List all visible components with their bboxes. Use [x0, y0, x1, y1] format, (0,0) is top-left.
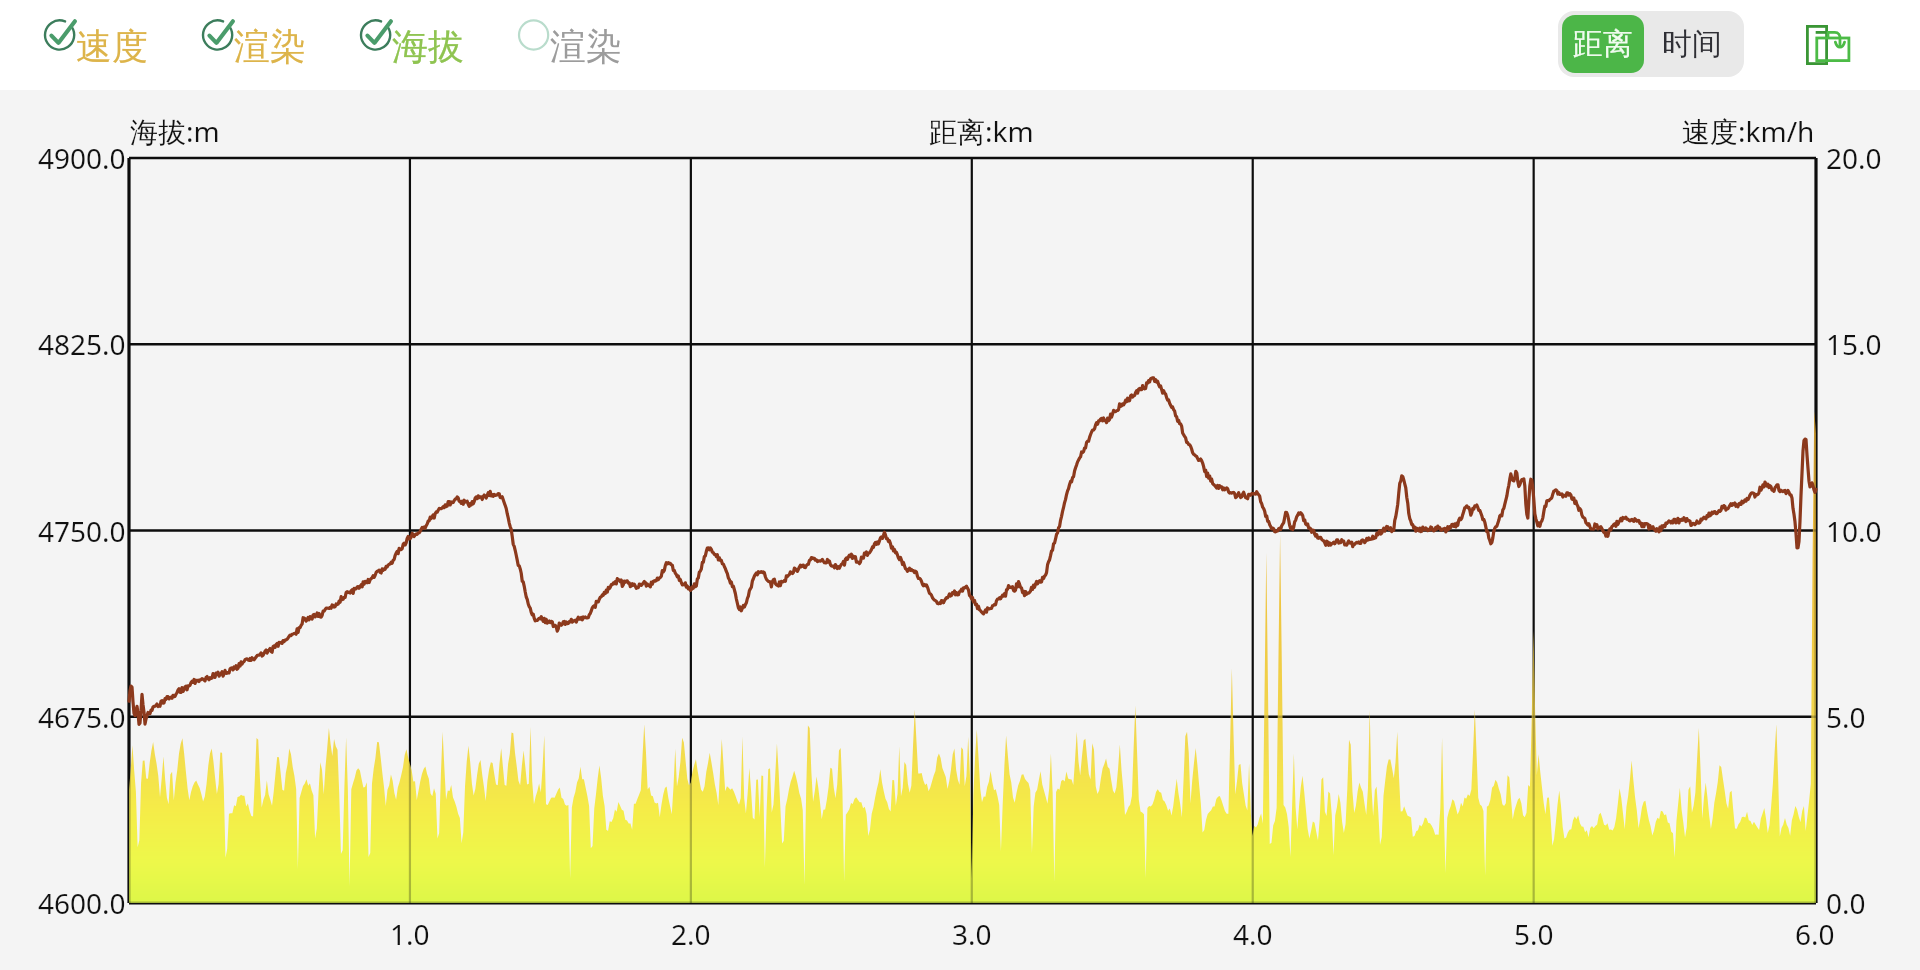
- staticText: 海拔: [392, 24, 464, 69]
- staticText: 15.0: [1826, 325, 1882, 363]
- button[interactable]: Export file: [1806, 25, 1850, 65]
- staticText: 6.0: [1795, 915, 1835, 953]
- staticText: 1.0: [390, 915, 430, 953]
- staticText: 渲染: [550, 24, 622, 69]
- button[interactable]: 渲染: [197, 14, 313, 76]
- staticText: 速度: [76, 24, 148, 69]
- button[interactable]: 速度: [39, 14, 155, 76]
- staticText: 4675.0: [38, 698, 126, 736]
- staticText: 2.0: [671, 915, 711, 953]
- button[interactable]: 海拔: [355, 14, 471, 76]
- staticText: 距离: [1573, 25, 1633, 63]
- staticText: 4.0: [1233, 915, 1273, 953]
- staticText: 4600.0: [38, 884, 126, 922]
- staticText: 速度:km/h: [1682, 112, 1815, 150]
- staticText: 10.0: [1826, 512, 1882, 550]
- button[interactable]: 距离: [1562, 15, 1644, 73]
- staticText: 距离:km: [929, 112, 1034, 150]
- button[interactable]: 时间: [1644, 15, 1740, 73]
- button[interactable]: 渲染: [513, 14, 629, 76]
- staticText: 渲染: [234, 24, 306, 69]
- staticText: 4825.0: [38, 325, 126, 363]
- staticText: 海拔:m: [130, 112, 220, 150]
- staticText: 5.0: [1826, 698, 1866, 736]
- staticText: 20.0: [1826, 139, 1882, 177]
- staticText: 3.0: [952, 915, 992, 953]
- staticText: 5.0: [1514, 915, 1554, 953]
- staticText: 时间: [1662, 25, 1722, 63]
- staticText: 4900.0: [38, 139, 126, 177]
- staticText: 0.0: [1826, 884, 1866, 922]
- staticText: 4750.0: [38, 512, 126, 550]
